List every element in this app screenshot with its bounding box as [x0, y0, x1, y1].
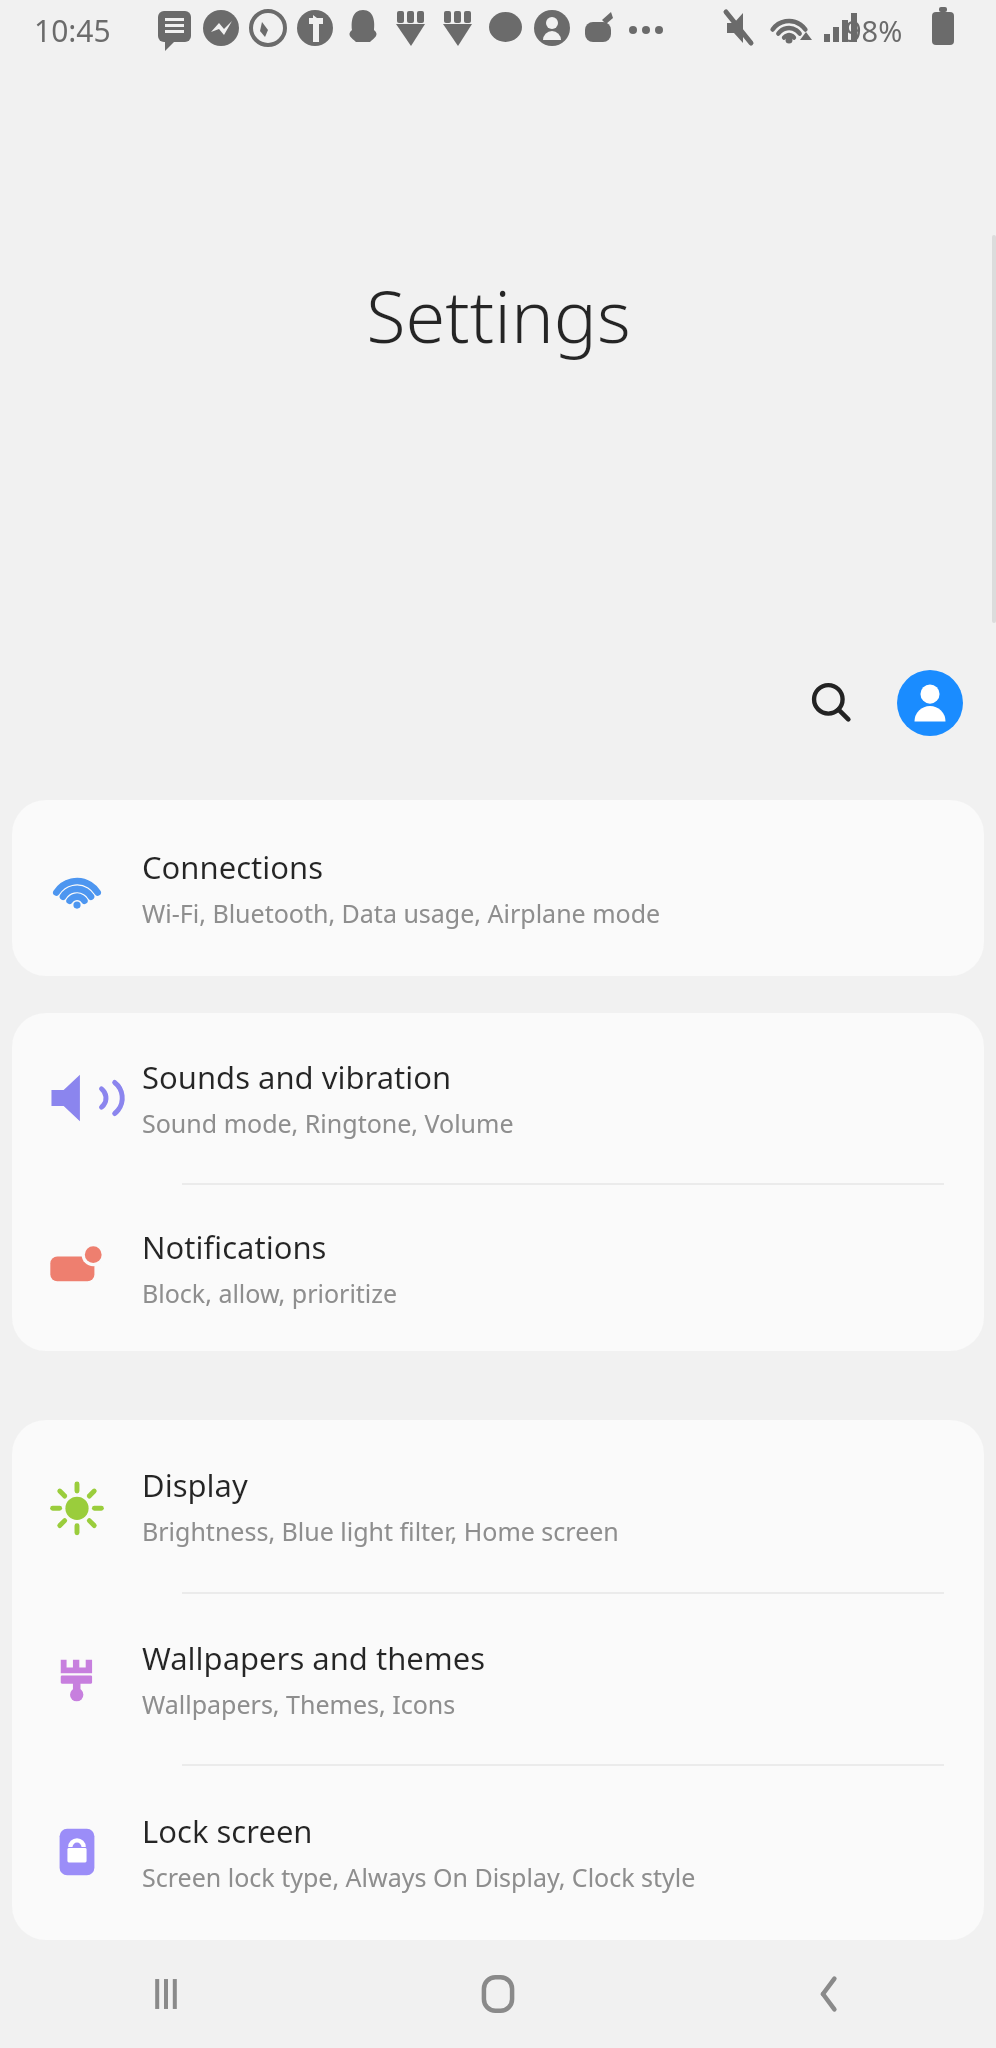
button[interactable]: Wallpapers and themes	[12, 1594, 984, 1764]
button[interactable]: Connections	[12, 800, 984, 976]
staticText: 10:45	[34, 10, 111, 51]
staticText: Sound mode, Ringtone, Volume	[142, 1106, 514, 1140]
button[interactable]: Lock screen	[12, 1766, 984, 1938]
staticText: Connections	[142, 846, 323, 888]
staticText: 98%	[845, 11, 903, 50]
button[interactable]: Sounds and vibration	[12, 1013, 984, 1183]
staticText: Screen lock type, Always On Display, Clo…	[142, 1860, 696, 1894]
button[interactable]: Search	[788, 659, 876, 747]
staticText: Lock screen	[142, 1810, 313, 1852]
button[interactable]: Account	[886, 659, 974, 747]
staticText: Settings	[366, 266, 631, 364]
button[interactable]: Recents	[0, 1940, 332, 2048]
staticText: Notifications	[142, 1226, 327, 1268]
button[interactable]: Notifications	[12, 1185, 984, 1351]
button[interactable]: Back	[664, 1940, 996, 2048]
button[interactable]: Display	[12, 1420, 984, 1592]
staticText: Brightness, Blue light filter, Home scre…	[142, 1514, 619, 1548]
staticText: Wi-Fi, Bluetooth, Data usage, Airplane m…	[142, 896, 661, 930]
button[interactable]: Home	[332, 1940, 664, 2048]
staticText: Display	[142, 1464, 248, 1506]
staticText: Wallpapers, Themes, Icons	[142, 1687, 456, 1721]
staticText: Block, allow, prioritize	[142, 1276, 398, 1310]
staticText: Wallpapers and themes	[142, 1637, 486, 1679]
staticText: Sounds and vibration	[142, 1056, 452, 1098]
